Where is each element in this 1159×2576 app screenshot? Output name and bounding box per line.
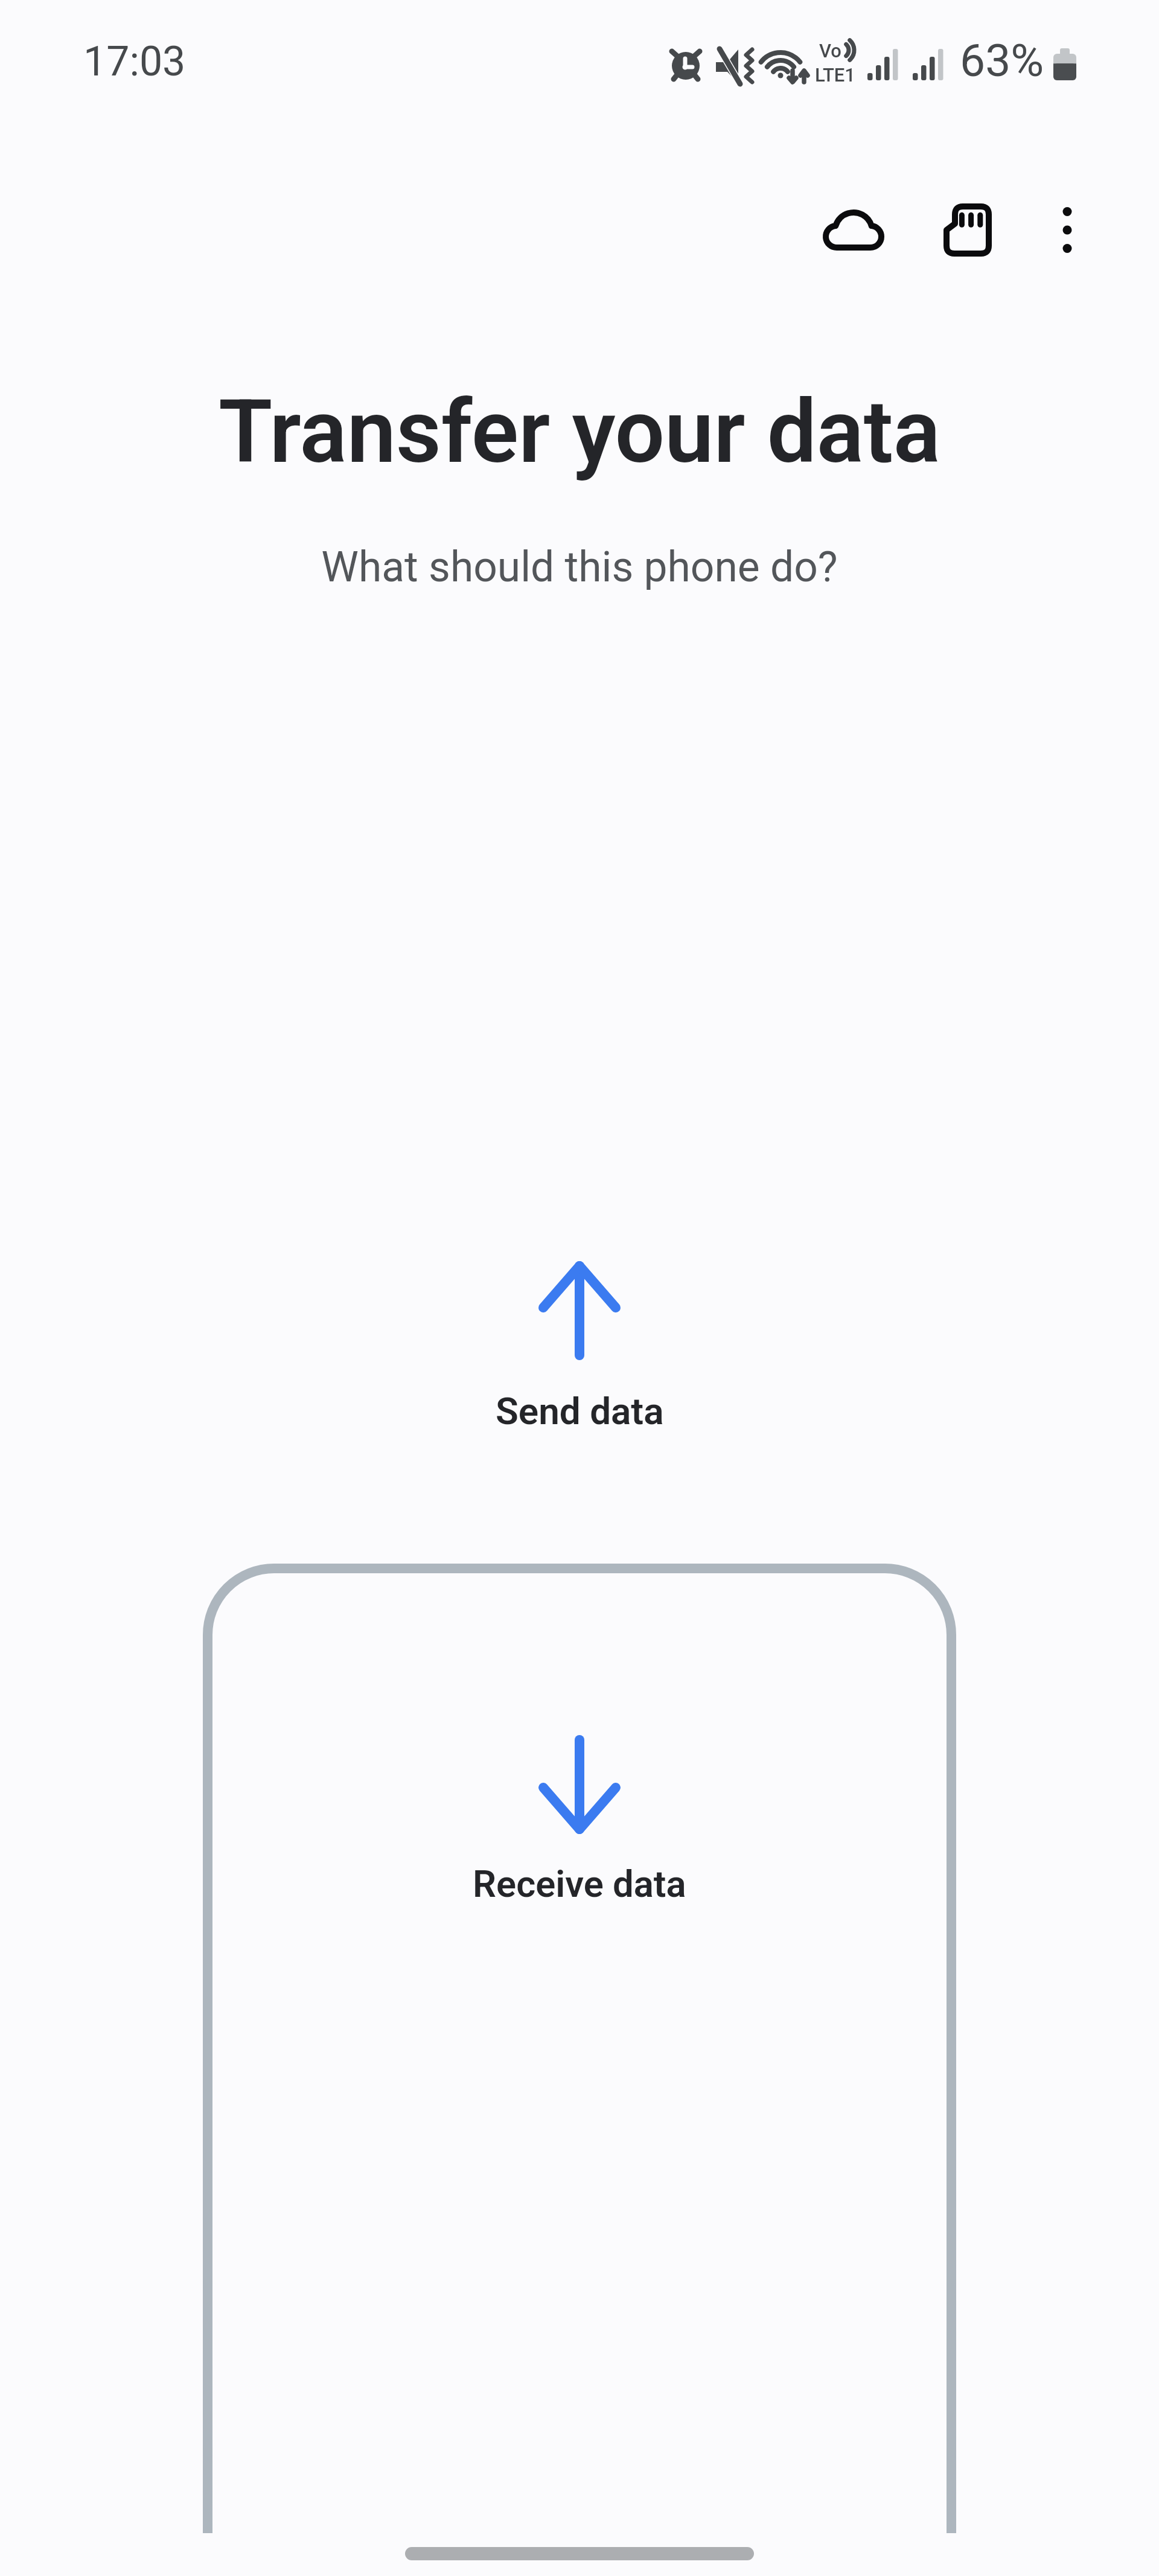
staticText: Vo [819, 40, 841, 62]
staticText: 17:03 [83, 37, 186, 86]
button[interactable]: Send data [203, 1165, 956, 1485]
button[interactable]: Cloud backup [796, 173, 911, 287]
staticText: What should this phone do? [0, 543, 1159, 592]
button[interactable]: SD card [910, 173, 1025, 287]
staticText: LTE1 [815, 64, 855, 86]
staticText: Receive data [473, 1862, 686, 1906]
button[interactable]: More options [1010, 173, 1125, 287]
staticText: Send data [496, 1389, 664, 1433]
staticText: 63% [960, 34, 1044, 87]
staticText: Transfer your data [0, 380, 1159, 484]
button[interactable]: Receive data [203, 1564, 956, 2533]
